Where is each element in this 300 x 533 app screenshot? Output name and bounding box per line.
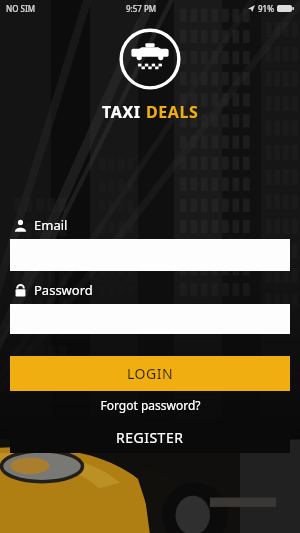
staticText: 9:57 PM <box>126 3 157 14</box>
staticText: NO SIM <box>6 3 36 14</box>
button[interactable]: LOGIN <box>10 356 290 391</box>
button[interactable]: REGISTER <box>10 421 290 453</box>
staticText: TAXI <box>102 101 146 123</box>
staticText: REGISTER <box>116 428 184 447</box>
staticText: 91% <box>258 3 274 14</box>
staticText: Password <box>34 281 93 299</box>
staticText: LOGIN <box>127 364 174 383</box>
staticText: DEALS <box>146 101 199 123</box>
staticText: Email <box>34 216 68 234</box>
button[interactable]: Forgot password? <box>0 397 300 413</box>
staticText: Forgot password? <box>100 397 201 413</box>
